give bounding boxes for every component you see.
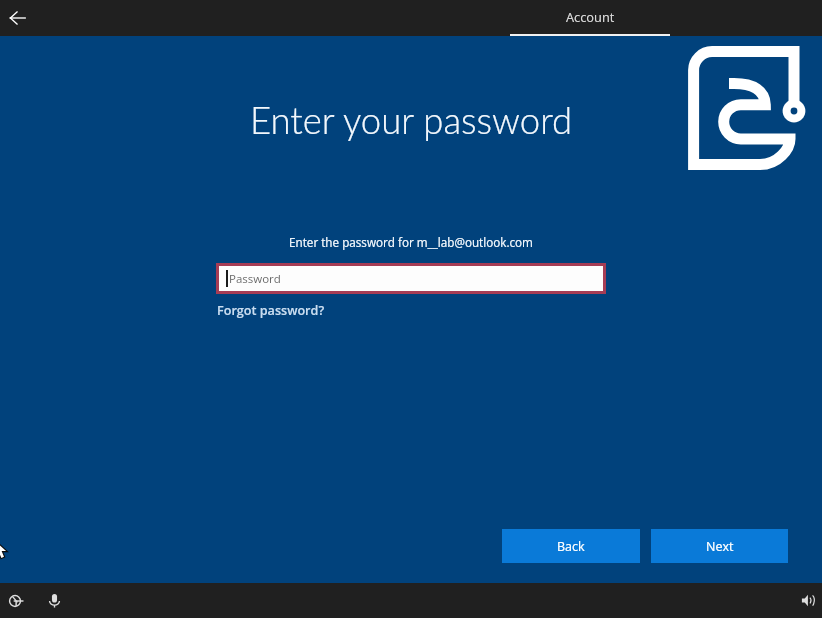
button[interactable]: Back — [0, 1, 34, 35]
button[interactable]: Account — [510, 0, 670, 36]
button[interactable]: Ease of access — [0, 585, 31, 616]
staticText: Enter the password for m__lab@outlook.co… — [289, 234, 533, 250]
staticText: Back — [557, 538, 585, 555]
button[interactable]: Next — [651, 529, 788, 563]
button[interactable]: Back — [502, 529, 640, 563]
staticText: Password — [229, 271, 281, 287]
button[interactable]: Password — [219, 266, 603, 291]
staticText: Next — [706, 538, 734, 555]
button[interactable]: Microphone — [39, 585, 70, 616]
staticText: Forgot password? — [217, 302, 325, 319]
staticText: Enter your password — [250, 98, 573, 142]
button[interactable]: Forgot password? — [217, 302, 325, 319]
staticText: Account — [566, 8, 615, 25]
button[interactable]: Volume — [793, 585, 822, 616]
